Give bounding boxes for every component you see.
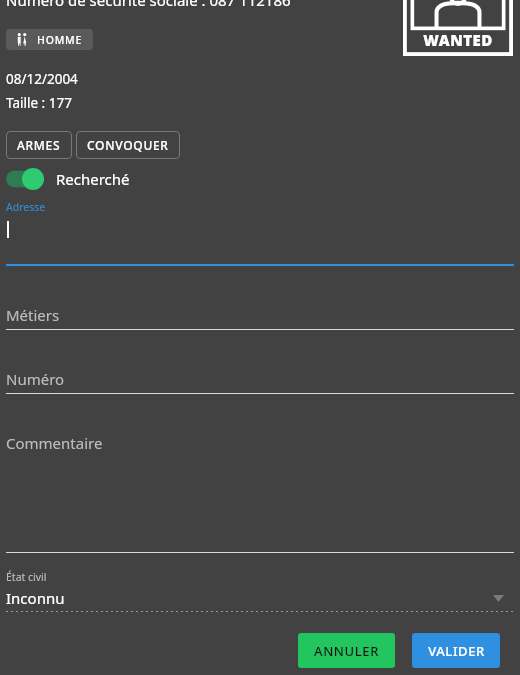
other: Genre xyxy=(16,33,28,46)
staticText: Numéro xyxy=(6,369,65,389)
button[interactable]: CONVOQUER xyxy=(76,131,180,159)
button[interactable]: Inconnu xyxy=(6,588,514,616)
staticText: État civil xyxy=(6,570,47,584)
staticText: WANTED xyxy=(423,30,493,50)
button[interactable]: Genre xyxy=(6,29,93,50)
button[interactable]: VALIDER xyxy=(412,633,500,668)
staticText: Numéro de sécurité sociale : 087 112186 xyxy=(6,0,291,10)
other: Ouvrir la liste xyxy=(493,595,504,602)
button[interactable]: ANNULER xyxy=(298,633,395,668)
staticText: Commentaire xyxy=(6,433,103,453)
staticText: ARMES xyxy=(17,137,61,153)
staticText: Adresse xyxy=(6,200,46,214)
button[interactable]: ARMES xyxy=(6,131,72,159)
staticText: ANNULER xyxy=(314,642,379,660)
staticText: Inconnu xyxy=(6,588,65,608)
other: Wanted xyxy=(403,0,513,56)
staticText: 08/12/2004 xyxy=(6,70,78,88)
staticText: Recherché xyxy=(56,169,130,189)
staticText: VALIDER xyxy=(428,642,485,660)
staticText: CONVOQUER xyxy=(87,137,169,153)
button[interactable]: Recherché xyxy=(6,168,138,190)
staticText: HOMME xyxy=(37,33,83,47)
staticText: Métiers xyxy=(6,305,60,325)
staticText: Taille : 177 xyxy=(6,94,72,112)
